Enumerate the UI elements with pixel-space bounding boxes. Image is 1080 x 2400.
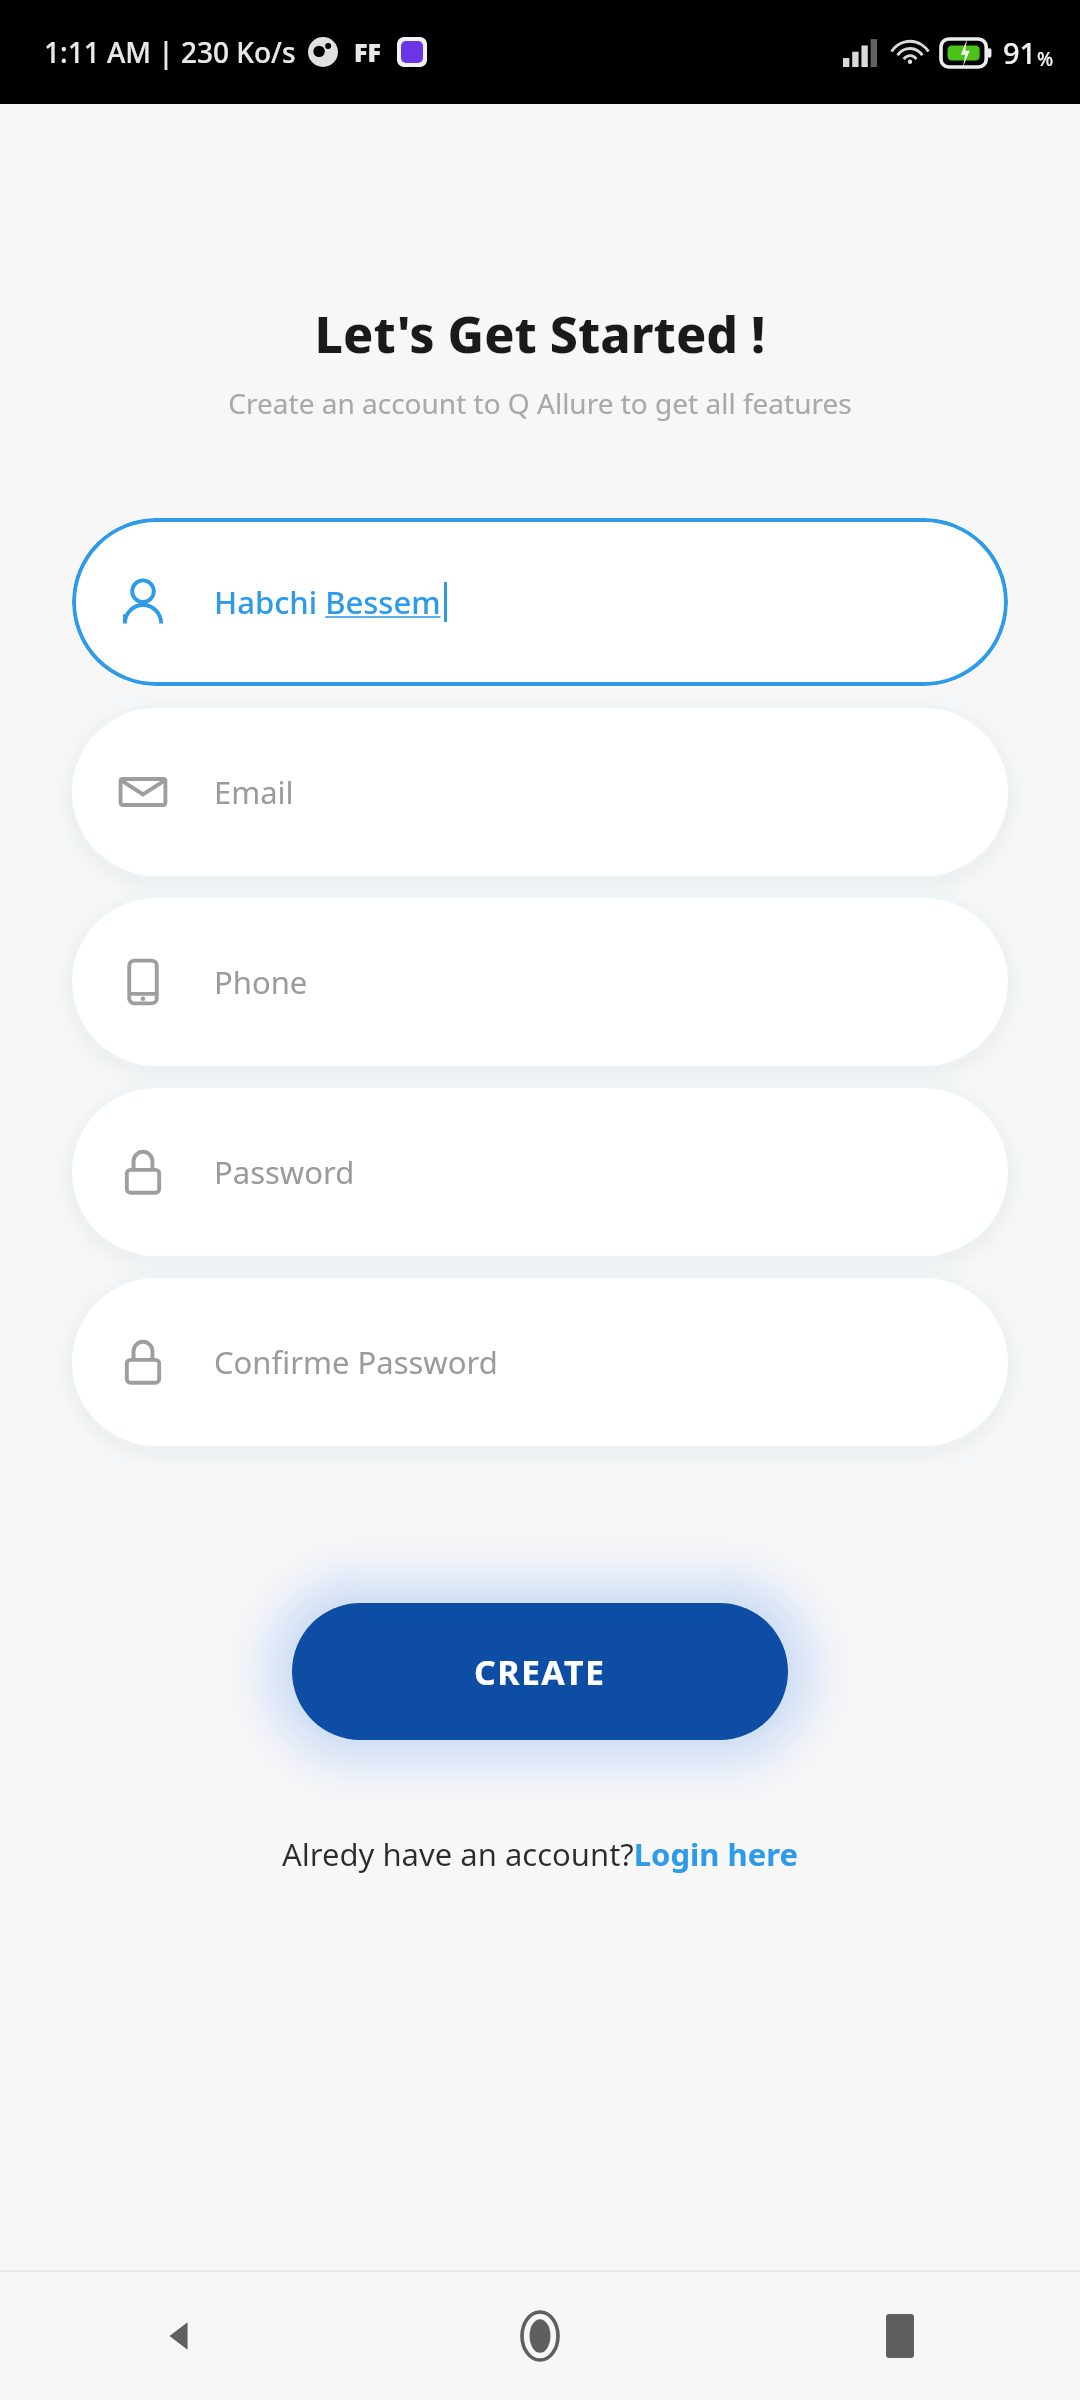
button[interactable]: Phone — [72, 898, 1008, 1066]
staticText: FF — [354, 35, 381, 69]
button[interactable]: Confirme Password — [72, 1278, 1008, 1446]
staticText: 1:11 AM | 230 Ko/s — [44, 33, 296, 71]
button[interactable]: Back — [0, 2272, 360, 2400]
button[interactable]: Password — [72, 1088, 1008, 1256]
staticText: Let's Get Started ! — [0, 300, 1080, 368]
button[interactable]: Email — [72, 708, 1008, 876]
button[interactable]: Alredy have an account?Login here — [0, 1833, 1080, 1875]
staticText: Phone — [214, 961, 308, 1003]
staticText: Alredy have an account?Login here — [282, 1833, 798, 1875]
button[interactable]: CREATE — [292, 1603, 788, 1740]
staticText: Create an account to Q Allure to get all… — [0, 384, 1080, 422]
staticText: 91 — [1003, 33, 1037, 72]
staticText: Confirme Password — [214, 1341, 498, 1383]
staticText: Email — [214, 771, 294, 813]
button[interactable]: Home — [360, 2272, 720, 2400]
button[interactable]: Habchi Bessem — [72, 518, 1008, 686]
staticText: Password — [214, 1151, 355, 1193]
staticText: % — [1037, 46, 1054, 72]
staticText: CREATE — [474, 1649, 606, 1695]
button[interactable]: Recent apps — [720, 2272, 1080, 2400]
staticText: Habchi Bessem — [214, 581, 441, 623]
